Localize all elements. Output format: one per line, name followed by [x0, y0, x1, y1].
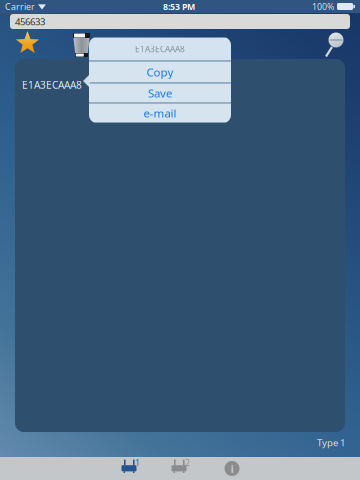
staticText: E1A3ECAAA8: [135, 43, 185, 55]
button[interactable]: Device 1: [114, 457, 148, 480]
staticText: 456633: [15, 15, 45, 28]
staticText: Copy: [146, 64, 173, 80]
staticText: 1: [135, 457, 140, 468]
button[interactable]: e-mail: [89, 103, 231, 122]
staticText: Save: [148, 85, 172, 101]
staticText: 100%: [312, 0, 334, 12]
staticText: Carrier: [5, 0, 35, 12]
button[interactable]: Device 2: [164, 457, 198, 480]
button[interactable]: Favourite: [15, 31, 40, 54]
staticText: 2: [185, 457, 190, 468]
button[interactable]: Save: [89, 83, 231, 102]
staticText: e-mail: [143, 105, 176, 121]
staticText: 8:53 PM: [163, 0, 195, 12]
staticText: Type 1: [317, 436, 345, 449]
button[interactable]: Copy: [89, 61, 231, 82]
button[interactable]: Delete: [73, 31, 90, 59]
button[interactable]: Search: [322, 31, 348, 59]
staticText: E1A3ECAAA8: [22, 78, 82, 92]
staticText: i: [230, 461, 233, 476]
button[interactable]: Info: [216, 457, 248, 480]
